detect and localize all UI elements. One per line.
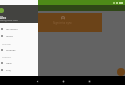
staticText: Sign in to sync	[53, 21, 72, 25]
button[interactable]: Help	[0, 59, 38, 66]
button[interactable]: Back	[34, 78, 40, 84]
staticText: Support	[2, 55, 12, 58]
staticText: Alex	[0, 16, 6, 20]
button[interactable]: Music	[0, 32, 38, 39]
staticText: My library	[6, 27, 18, 30]
button[interactable]: FAQ	[0, 66, 38, 73]
staticText: Music	[6, 34, 13, 37]
staticText: alex@mail.com	[0, 18, 18, 21]
button[interactable]: Settings	[0, 46, 38, 53]
staticText: Help	[6, 61, 12, 64]
button[interactable]: Home	[60, 78, 66, 84]
button[interactable]: Sign in to sync	[23, 13, 102, 32]
staticText: FAQ	[6, 68, 11, 71]
button[interactable]: My library	[0, 25, 38, 32]
staticText: Settings	[6, 48, 16, 51]
button[interactable]: Add	[117, 68, 125, 76]
staticText: Storage	[2, 42, 11, 45]
button[interactable]: Recents	[86, 78, 92, 84]
